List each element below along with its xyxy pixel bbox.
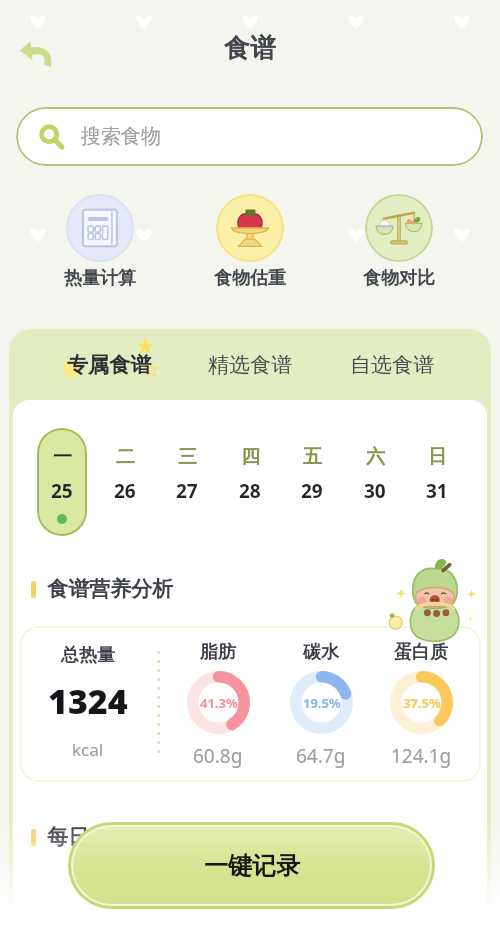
staticText: 六 <box>366 445 385 469</box>
button[interactable]: Back <box>13 30 59 76</box>
button[interactable]: 食物估重 <box>205 194 295 290</box>
button[interactable]: 自选食谱 <box>340 329 444 400</box>
staticText: 31 <box>426 478 448 504</box>
staticText: 25 <box>51 478 73 504</box>
staticText: 19.5% <box>303 694 341 712</box>
button[interactable]: 一 <box>37 428 87 536</box>
staticText: 食物对比 <box>363 267 435 290</box>
staticText: 食谱 <box>224 32 276 65</box>
staticText: 日 <box>428 445 447 469</box>
staticText: 碳水 <box>303 641 339 664</box>
button[interactable]: 食物对比 <box>354 194 444 290</box>
staticText: 专属食谱 <box>67 352 151 378</box>
button[interactable]: 六 <box>350 428 400 536</box>
staticText: kcal <box>72 738 104 761</box>
button[interactable]: 热量计算 <box>55 194 145 290</box>
staticText: 41.3% <box>200 694 238 712</box>
staticText: 29 <box>301 478 323 504</box>
staticText: 一 <box>53 445 72 469</box>
staticText: 64.7g <box>296 743 346 769</box>
staticText: 脂肪 <box>200 641 236 664</box>
staticText: 37.5% <box>403 694 441 712</box>
staticText: 热量计算 <box>64 267 136 290</box>
button[interactable]: 五 <box>287 428 337 536</box>
staticText: 四 <box>241 445 260 469</box>
button[interactable]: 日 <box>412 428 462 536</box>
staticText: 60.8g <box>193 743 243 769</box>
staticText: 124.1g <box>391 743 452 769</box>
staticText: 每日食谱 <box>47 824 131 850</box>
button[interactable]: 四 <box>225 428 275 536</box>
staticText: 总热量 <box>61 644 115 667</box>
staticText: 食谱营养分析 <box>47 576 173 602</box>
staticText: 26 <box>114 478 136 504</box>
staticText: 1324 <box>48 678 128 724</box>
button[interactable]: 三 <box>162 428 212 536</box>
staticText: 蛋白质 <box>394 641 448 664</box>
staticText: 30 <box>364 478 386 504</box>
staticText: 二 <box>116 445 135 469</box>
staticText: 精选食谱 <box>208 352 292 378</box>
staticText: 一键记录 <box>204 851 300 881</box>
staticText: 三 <box>178 445 197 469</box>
button[interactable]: 专属食谱 <box>57 329 161 400</box>
staticText: 自选食谱 <box>350 352 434 378</box>
button[interactable]: 二 <box>100 428 150 536</box>
staticText: 搜索食物 <box>81 124 161 149</box>
staticText: 27 <box>176 478 198 504</box>
staticText: 食物估重 <box>214 267 286 290</box>
staticText: 28 <box>239 478 261 504</box>
staticText: 五 <box>303 445 322 469</box>
button[interactable]: 精选食谱 <box>198 329 302 400</box>
button[interactable]: 搜索食物 <box>16 107 483 166</box>
button[interactable]: 一键记录 <box>73 827 430 904</box>
